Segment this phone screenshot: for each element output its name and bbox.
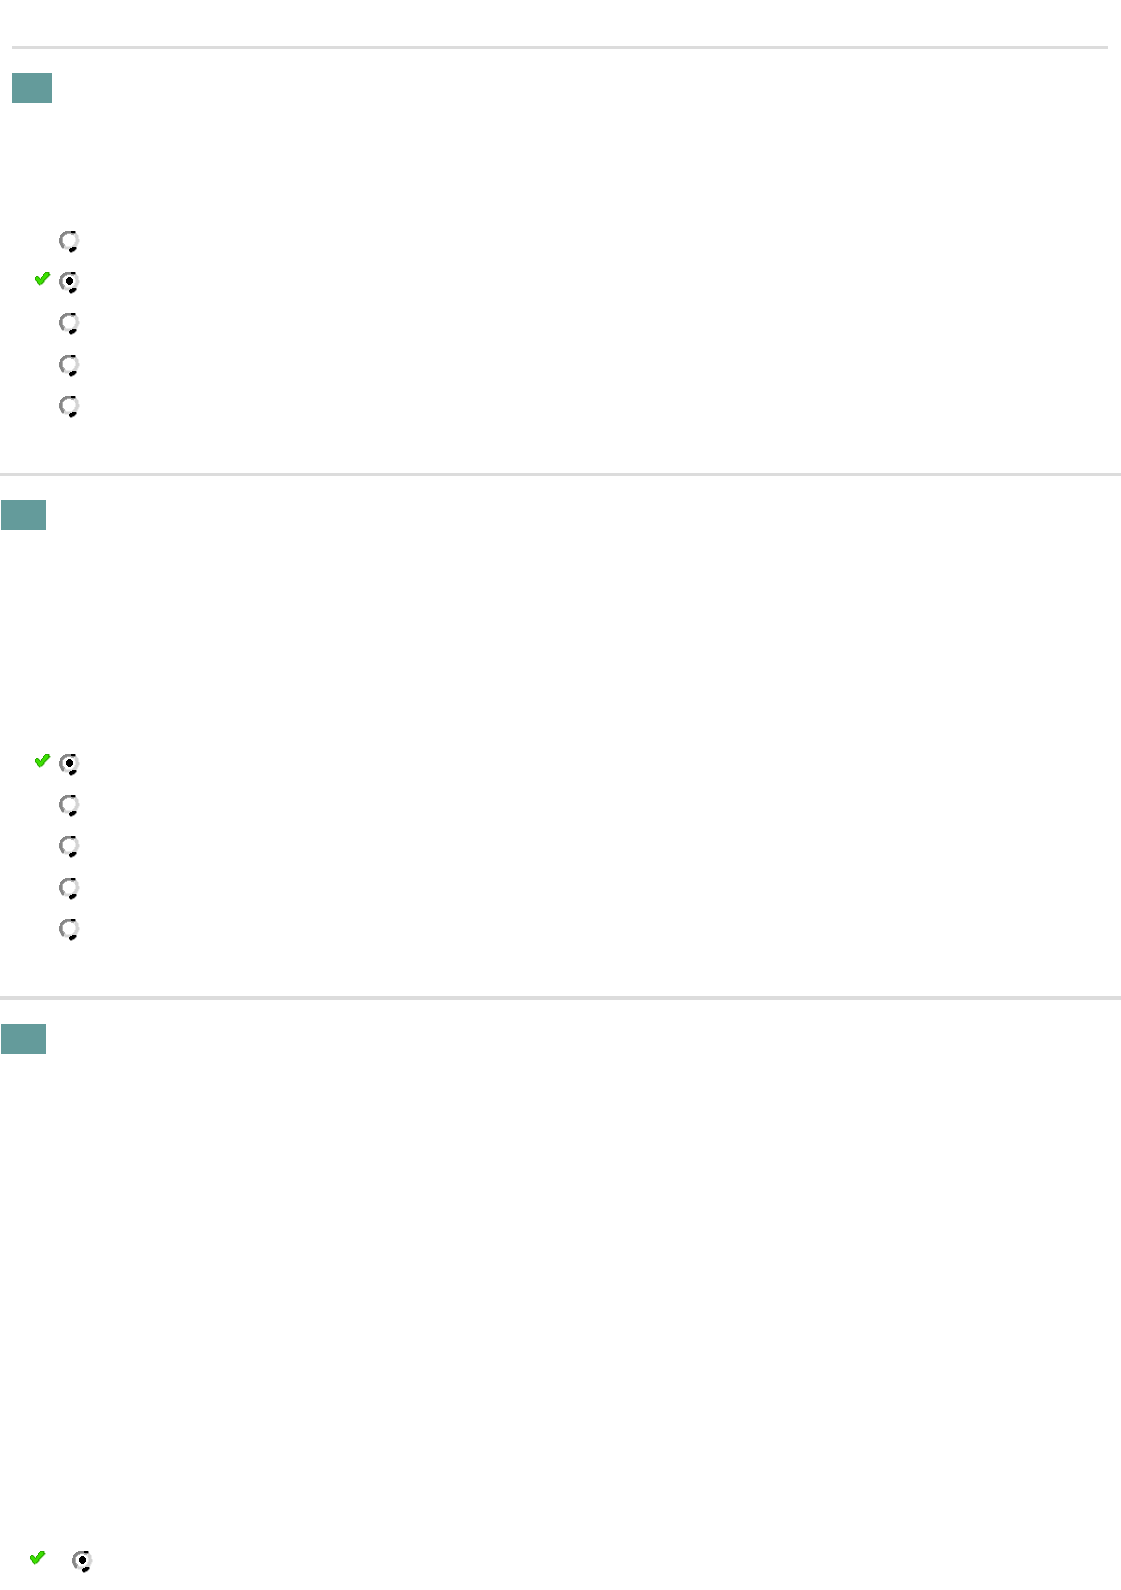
button[interactable]: Answer option	[35, 313, 79, 336]
button[interactable]: Answer option	[35, 919, 79, 942]
button[interactable]: Selected answer	[30, 1551, 92, 1574]
button[interactable]: Selected answer	[35, 272, 79, 295]
button[interactable]: Answer option	[35, 878, 79, 901]
button[interactable]: Answer option	[35, 795, 79, 818]
button[interactable]: Answer option	[35, 396, 79, 419]
button[interactable]: Selected answer	[35, 754, 79, 777]
button[interactable]: Answer option	[35, 836, 79, 859]
button[interactable]: Answer option	[35, 231, 79, 254]
button[interactable]: Answer option	[35, 355, 79, 378]
